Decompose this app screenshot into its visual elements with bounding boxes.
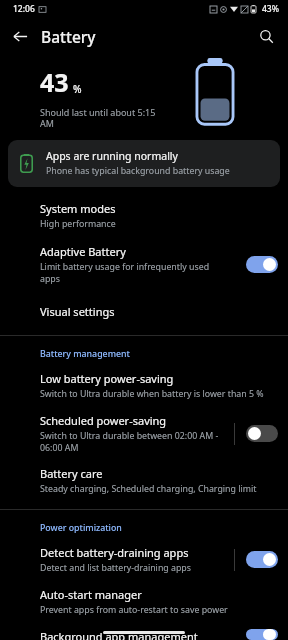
staticText: 43 <box>40 65 69 99</box>
staticText: Detect and list battery-draining apps <box>40 562 191 574</box>
staticText: Phone has typical background battery usa… <box>46 165 230 177</box>
staticText: Adaptive Battery <box>40 244 126 259</box>
button[interactable]: Toggle off <box>246 425 278 442</box>
staticText: Visual settings <box>40 304 115 319</box>
button[interactable]: Toggle on <box>246 551 278 568</box>
staticText: Detect battery-draining apps <box>40 545 189 560</box>
staticText: Auto-start manager <box>40 587 142 602</box>
button[interactable]: Adaptive Battery <box>0 244 288 285</box>
button[interactable]: Toggle on <box>246 629 278 640</box>
staticText: Should last until about 5:15 AM <box>40 106 156 130</box>
staticText: Prevent apps from auto-restart to save p… <box>40 604 228 616</box>
staticText: Battery care <box>40 466 103 481</box>
button[interactable]: Apps are running normally <box>8 140 280 187</box>
button[interactable]: Toggle on <box>246 256 278 273</box>
staticText: % <box>73 82 82 96</box>
staticText: 12:06 <box>13 3 35 15</box>
staticText: Background app management <box>40 629 198 640</box>
staticText: Steady charging, Scheduled charging, Cha… <box>40 483 257 495</box>
button[interactable]: Visual settings <box>0 304 288 319</box>
staticText: Switch to Ultra durable when battery is … <box>40 388 264 400</box>
button[interactable]: Auto-start manager <box>0 587 288 616</box>
staticText: Battery <box>41 26 96 47</box>
button[interactable]: Search <box>250 20 282 52</box>
button[interactable]: Scheduled power-saving <box>0 413 288 454</box>
staticText: Low battery power-saving <box>40 371 174 386</box>
staticText: High performance <box>40 218 116 230</box>
button[interactable]: System modes <box>0 201 288 230</box>
staticText: System modes <box>40 201 116 216</box>
staticText: 43% <box>262 3 279 15</box>
staticText: Switch to Ultra durable between 02:00 AM… <box>40 430 219 454</box>
button[interactable]: Detect battery-draining apps <box>0 545 288 574</box>
staticText: Apps are running normally <box>46 149 178 163</box>
staticText: Scheduled power-saving <box>40 413 167 428</box>
button[interactable]: Battery care <box>0 466 288 495</box>
button[interactable]: Background app management <box>0 629 288 640</box>
button[interactable]: Back <box>4 20 36 52</box>
staticText: Limit battery usage for infrequently use… <box>40 261 226 285</box>
staticText: Power optimization <box>40 522 122 534</box>
staticText: Battery management <box>40 348 130 360</box>
button[interactable]: Low battery power-saving <box>0 371 288 400</box>
